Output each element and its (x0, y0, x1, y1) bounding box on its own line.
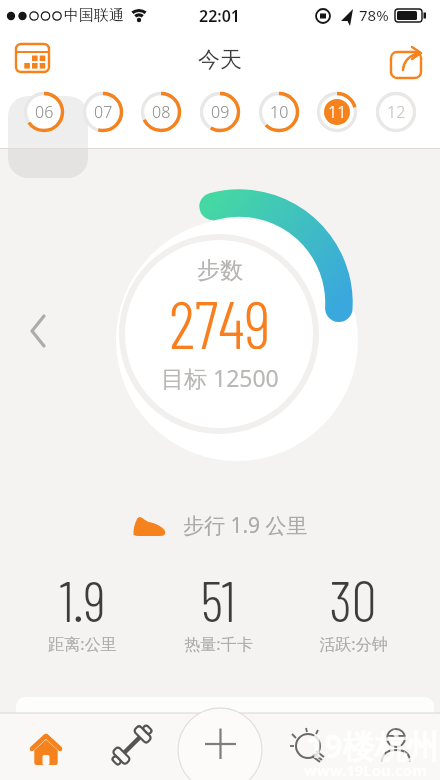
staticText: 步行 1.9 公里 (183, 511, 308, 540)
staticText: 78% (359, 5, 389, 25)
button[interactable]: 08 (140, 91, 182, 133)
staticText: 08 (152, 101, 171, 123)
staticText: 1.9 (59, 566, 106, 633)
staticText: 目标 12500 (161, 362, 279, 392)
button[interactable]: 51 (148, 566, 288, 655)
button[interactable] (106, 720, 158, 770)
button[interactable]: 09 (199, 91, 241, 133)
button[interactable] (18, 726, 74, 766)
staticText: 22:01 (199, 5, 241, 27)
staticText: 热量:千卡 (184, 633, 253, 655)
staticText: www.19Lou.com (304, 760, 427, 780)
staticText: 今天 (198, 46, 242, 74)
button[interactable]: 06 (23, 91, 65, 133)
staticText: 19楼杭州 (306, 724, 439, 768)
staticText: 11 (328, 101, 347, 123)
button[interactable] (284, 720, 336, 772)
button[interactable]: 1.9 (12, 566, 152, 655)
button[interactable] (20, 310, 56, 354)
staticText: 活跃:分钟 (319, 633, 388, 655)
button[interactable]: 30 (283, 566, 423, 655)
button[interactable] (370, 718, 422, 770)
staticText: 30 (329, 566, 377, 633)
staticText: 距离:公里 (48, 633, 117, 655)
staticText: 06 (35, 101, 54, 123)
staticText: 07 (94, 101, 113, 123)
button[interactable] (12, 40, 54, 76)
staticText: 09 (211, 101, 230, 123)
staticText: 中国联通 (64, 6, 124, 25)
staticText: 步数 (197, 256, 243, 285)
staticText: 2749 (169, 283, 271, 349)
button[interactable]: 07 (82, 91, 124, 133)
button[interactable]: 11 (316, 91, 358, 133)
button[interactable]: 10 (258, 91, 300, 133)
staticText: 10 (270, 101, 289, 123)
button[interactable]: 12 (375, 91, 417, 133)
staticText: 51 (200, 566, 236, 633)
button[interactable] (386, 40, 430, 80)
button[interactable]: 步行 1.9 公里 (132, 511, 308, 540)
staticText: 12 (387, 101, 406, 123)
